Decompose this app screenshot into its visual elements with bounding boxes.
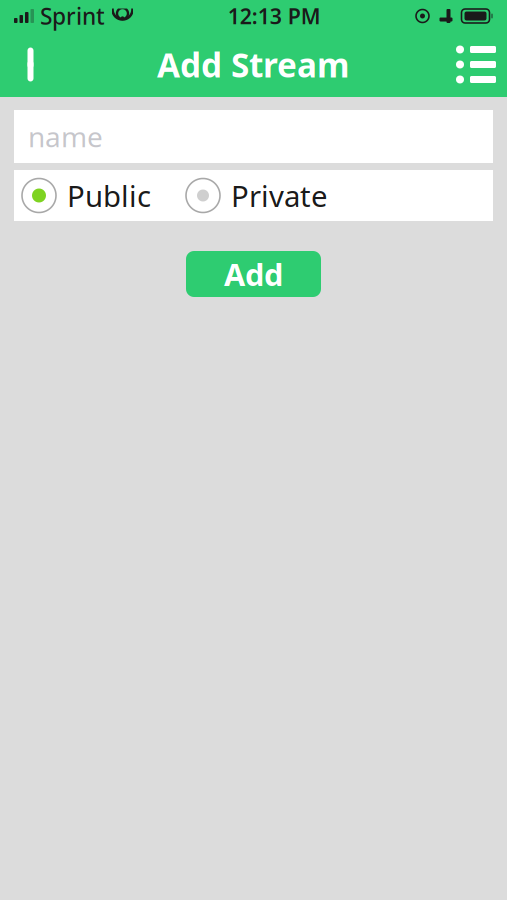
staticText: name bbox=[28, 118, 103, 155]
button[interactable]: Back bbox=[0, 32, 62, 97]
staticText: Private bbox=[231, 176, 328, 215]
button[interactable]: Add bbox=[186, 251, 321, 297]
button[interactable]: Public bbox=[14, 170, 161, 221]
staticText: Sprint bbox=[40, 1, 105, 31]
button[interactable]: Menu bbox=[445, 32, 507, 97]
button[interactable]: Private bbox=[186, 170, 338, 221]
staticText: 12:13 PM bbox=[228, 2, 321, 30]
staticText: Public bbox=[67, 176, 151, 215]
button[interactable]: name bbox=[14, 110, 493, 163]
staticText: Add bbox=[224, 254, 283, 294]
staticText: Add Stream bbox=[157, 42, 350, 87]
